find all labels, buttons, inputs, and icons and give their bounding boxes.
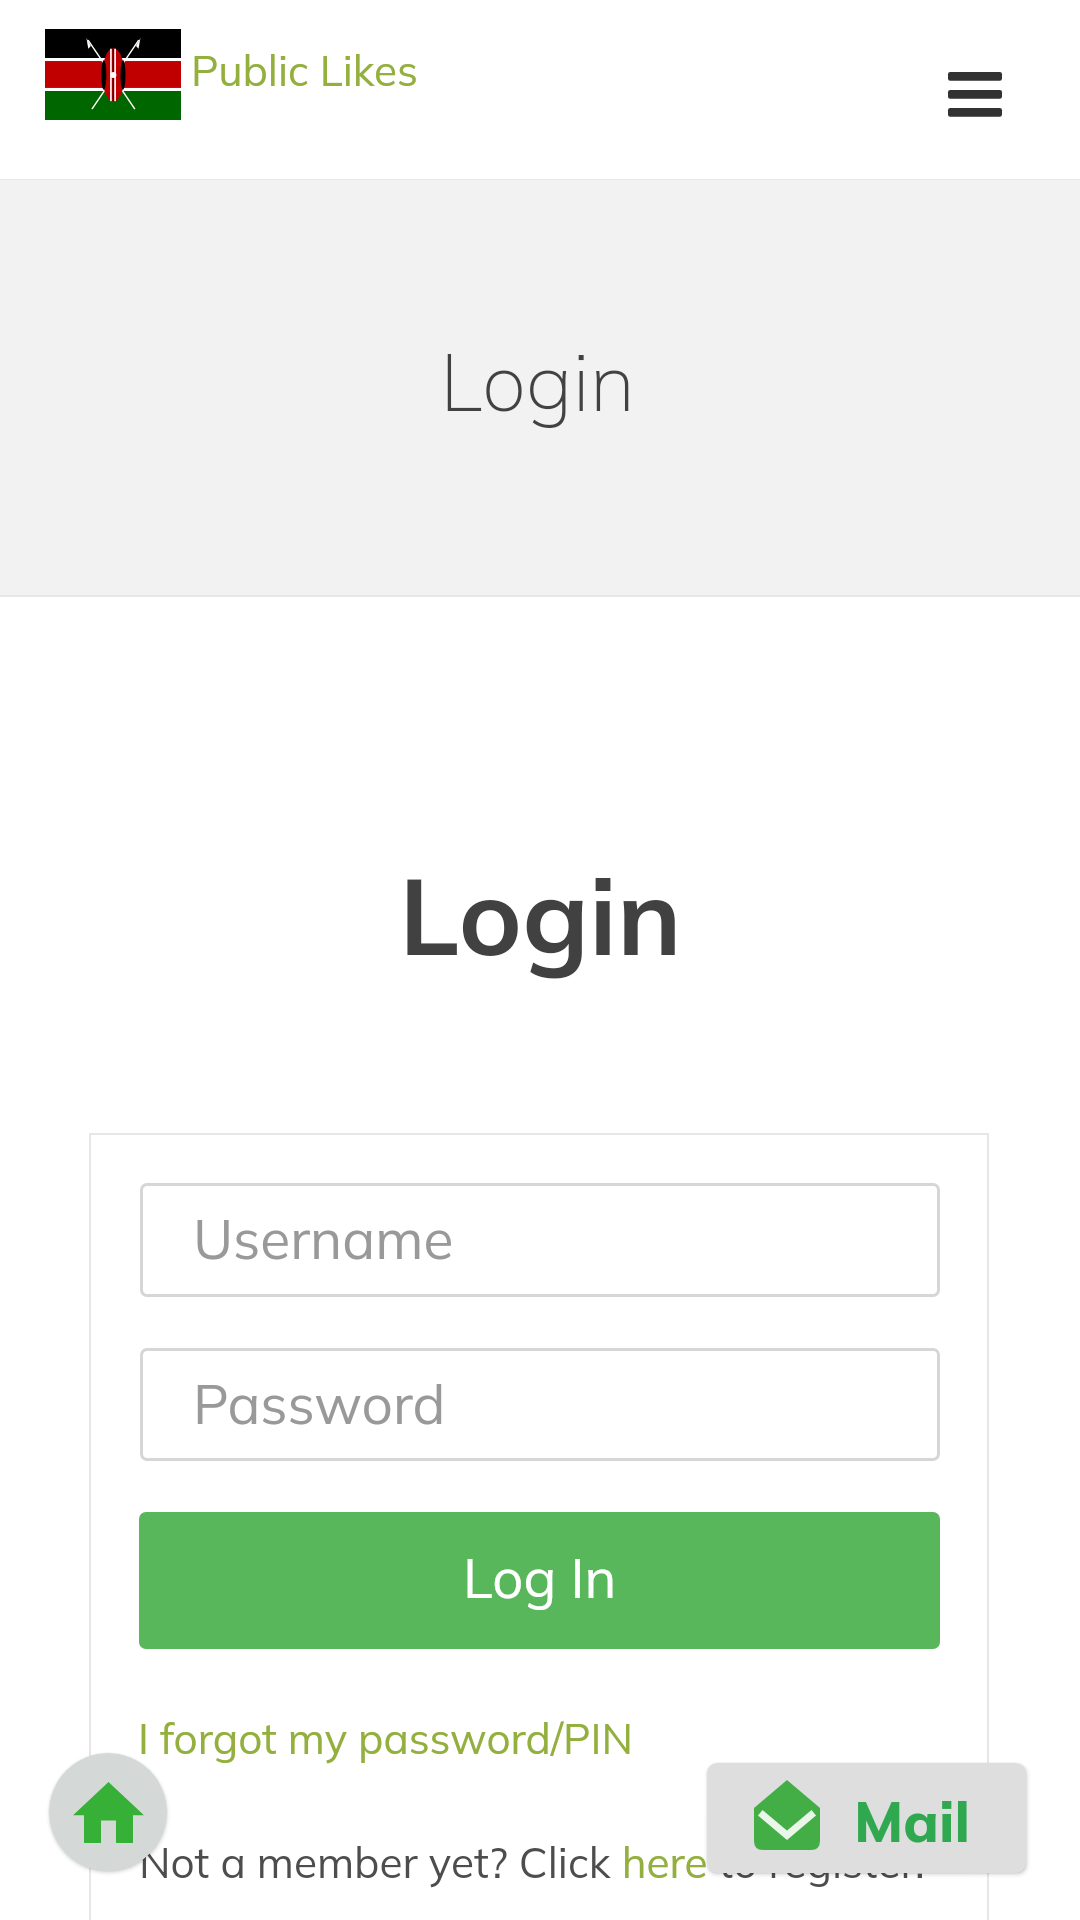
staticText: I forgot my password/PIN (138, 1712, 633, 1765)
staticText: Login (440, 331, 636, 431)
button[interactable] (140, 1183, 940, 1297)
staticText: Log In (463, 1543, 617, 1611)
button[interactable]: Open menu (926, 50, 1024, 138)
button[interactable]: I forgot my password/PIN (138, 1712, 633, 1765)
button[interactable]: Home (49, 1753, 167, 1871)
button[interactable] (139, 1512, 940, 1649)
staticText: Login (399, 847, 682, 982)
button[interactable]: Not a member yet? Click here to register… (139, 1835, 925, 1888)
button[interactable] (140, 1348, 940, 1461)
staticText: Mail (854, 1785, 970, 1856)
staticText: Not a member yet? Click here to register… (139, 1835, 925, 1888)
staticText: Public Likes (191, 44, 418, 97)
staticText: Password (193, 1369, 446, 1438)
staticText: Username (193, 1204, 454, 1273)
button[interactable]: Mail (707, 1763, 1026, 1873)
